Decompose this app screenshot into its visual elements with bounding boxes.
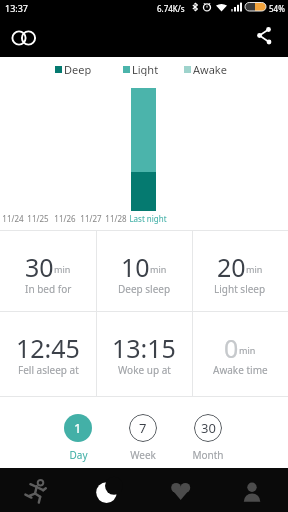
staticText: 13:15 <box>112 331 176 361</box>
staticText: 13:37 <box>5 2 29 14</box>
button[interactable]: 13:15 <box>96 312 192 396</box>
button[interactable]: 0 <box>192 312 288 396</box>
staticText: 10 <box>121 250 150 280</box>
staticText: 20 <box>217 250 246 280</box>
staticText: Woke up at <box>118 363 171 377</box>
staticText: Fell asleep at <box>18 363 79 377</box>
staticText: 7 <box>139 419 147 437</box>
staticText: 0 <box>224 331 239 361</box>
button[interactable]: 20 <box>192 231 288 311</box>
staticText: min <box>246 263 263 275</box>
button[interactable]: 10 <box>96 231 192 311</box>
staticText: 30 <box>201 419 216 437</box>
staticText: Month <box>192 448 224 462</box>
staticText: Day <box>69 448 88 462</box>
staticText: Awake time <box>213 363 268 377</box>
staticText: min <box>239 344 256 356</box>
button[interactable]: 30 <box>0 231 96 311</box>
staticText: 54% <box>269 3 285 14</box>
button[interactable] <box>216 468 288 512</box>
staticText: 1 <box>74 419 82 437</box>
staticText: Last night <box>129 213 167 224</box>
staticText: Light sleep <box>214 282 266 296</box>
staticText: 6.74K/s <box>157 3 185 14</box>
button[interactable] <box>8 26 42 52</box>
staticText: 11/25 <box>27 213 49 224</box>
staticText: Deep sleep <box>118 282 171 296</box>
staticText: 11/28 <box>105 213 127 224</box>
button[interactable] <box>0 468 72 512</box>
button[interactable]: 7 <box>129 414 157 442</box>
staticText: Week <box>130 448 156 462</box>
button[interactable] <box>144 468 216 512</box>
staticText: 11/26 <box>54 213 76 224</box>
button[interactable]: 12:45 <box>0 312 96 396</box>
staticText: 30 <box>25 250 54 280</box>
button[interactable]: 30 <box>194 414 222 442</box>
button[interactable] <box>248 22 278 50</box>
staticText: min <box>150 263 167 275</box>
staticText: Deep <box>64 62 92 76</box>
staticText: Light <box>132 62 159 76</box>
button[interactable]: 1 <box>64 414 92 442</box>
staticText: Awake <box>193 62 227 76</box>
staticText: 12:45 <box>16 331 80 361</box>
button[interactable] <box>72 468 144 512</box>
staticText: In bed for <box>25 282 72 296</box>
staticText: 11/27 <box>80 213 102 224</box>
staticText: 11/24 <box>2 213 24 224</box>
staticText: min <box>54 263 71 275</box>
